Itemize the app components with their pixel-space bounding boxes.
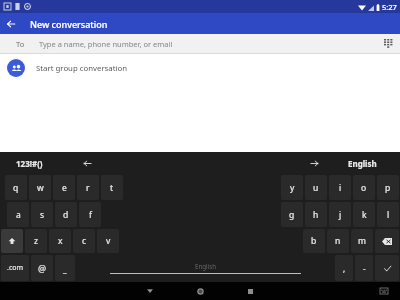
staticText: - [363, 263, 366, 274]
button[interactable]: s [31, 202, 53, 227]
staticText: _ [63, 263, 67, 274]
button[interactable]: Recent apps [241, 282, 259, 300]
staticText: u [313, 182, 319, 194]
button[interactable]: English [348, 158, 377, 169]
staticText: h [313, 209, 319, 221]
staticText: s [40, 209, 45, 221]
button[interactable]: z [25, 229, 47, 253]
button[interactable]: n [327, 229, 349, 253]
button[interactable]: English [76, 254, 334, 282]
button[interactable]: f [79, 202, 101, 227]
button[interactable]: d [55, 202, 77, 227]
button[interactable]: Backspace [375, 229, 399, 253]
staticText: o [361, 182, 367, 194]
staticText: Type a name, phone number, or email [39, 39, 173, 49]
staticText: a [16, 209, 21, 221]
button[interactable]: To [0, 34, 400, 53]
button[interactable]: Navigate up [0, 13, 21, 34]
staticText: e [62, 182, 67, 194]
button[interactable]: e [53, 175, 75, 200]
staticText: j [339, 209, 342, 221]
staticText: q [13, 182, 19, 194]
staticText: English [348, 158, 377, 169]
button[interactable]: Enter [375, 255, 399, 281]
button[interactable]: Dialpad [379, 34, 398, 53]
button[interactable]: Next [307, 156, 321, 170]
button[interactable]: v [97, 229, 119, 253]
button[interactable]: x [49, 229, 71, 253]
button[interactable]: Switch keyboard [376, 283, 392, 299]
button[interactable]: h [305, 202, 327, 227]
button[interactable]: @ [31, 255, 53, 281]
button[interactable]: w [29, 175, 51, 200]
staticText: To [16, 39, 25, 49]
staticText: l [387, 209, 390, 221]
staticText: x [58, 235, 63, 247]
staticText: z [34, 235, 38, 247]
staticText: f [89, 209, 92, 221]
staticText: n [335, 235, 341, 247]
staticText: .com [7, 263, 24, 273]
staticText: k [362, 209, 367, 221]
staticText: Start group conversation [36, 63, 128, 74]
staticText: d [63, 209, 69, 221]
staticText: p [385, 182, 391, 194]
button[interactable]: a [7, 202, 29, 227]
staticText: 5:27 [382, 2, 397, 12]
staticText: 123!#() [16, 158, 43, 169]
staticText: w [37, 182, 44, 194]
staticText: g [289, 209, 295, 221]
button[interactable]: , [335, 255, 353, 281]
staticText: t [110, 182, 114, 194]
button[interactable]: Shift [1, 229, 23, 253]
staticText: v [106, 235, 111, 247]
staticText: c [82, 235, 87, 247]
staticText: i [339, 182, 342, 194]
button[interactable]: r [77, 175, 99, 200]
button[interactable]: m [351, 229, 373, 253]
staticText: y [290, 182, 295, 194]
button[interactable]: u [305, 175, 327, 200]
staticText: English [195, 262, 217, 270]
button[interactable]: y [281, 175, 303, 200]
button[interactable]: - [355, 255, 373, 281]
button[interactable]: i [329, 175, 351, 200]
button[interactable]: l [377, 202, 399, 227]
button[interactable]: j [329, 202, 351, 227]
staticText: r [86, 182, 90, 194]
button[interactable]: o [353, 175, 375, 200]
button[interactable]: _ [55, 255, 75, 281]
button[interactable]: q [5, 175, 27, 200]
button[interactable]: Start group conversation [0, 54, 400, 82]
button[interactable]: .com [1, 255, 29, 281]
button[interactable]: 123!#() [16, 158, 43, 169]
staticText: , [343, 263, 346, 274]
button[interactable]: k [353, 202, 375, 227]
button[interactable]: Home [191, 282, 209, 300]
staticText: m [358, 235, 366, 247]
button[interactable]: g [281, 202, 303, 227]
button[interactable]: t [101, 175, 123, 200]
button[interactable]: p [377, 175, 399, 200]
button[interactable]: b [303, 229, 325, 253]
button[interactable]: Back [141, 282, 159, 300]
button[interactable]: c [73, 229, 95, 253]
button[interactable]: Previous [80, 156, 94, 170]
staticText: b [311, 235, 317, 247]
staticText: @ [38, 262, 47, 274]
staticText: New conversation [30, 18, 108, 30]
